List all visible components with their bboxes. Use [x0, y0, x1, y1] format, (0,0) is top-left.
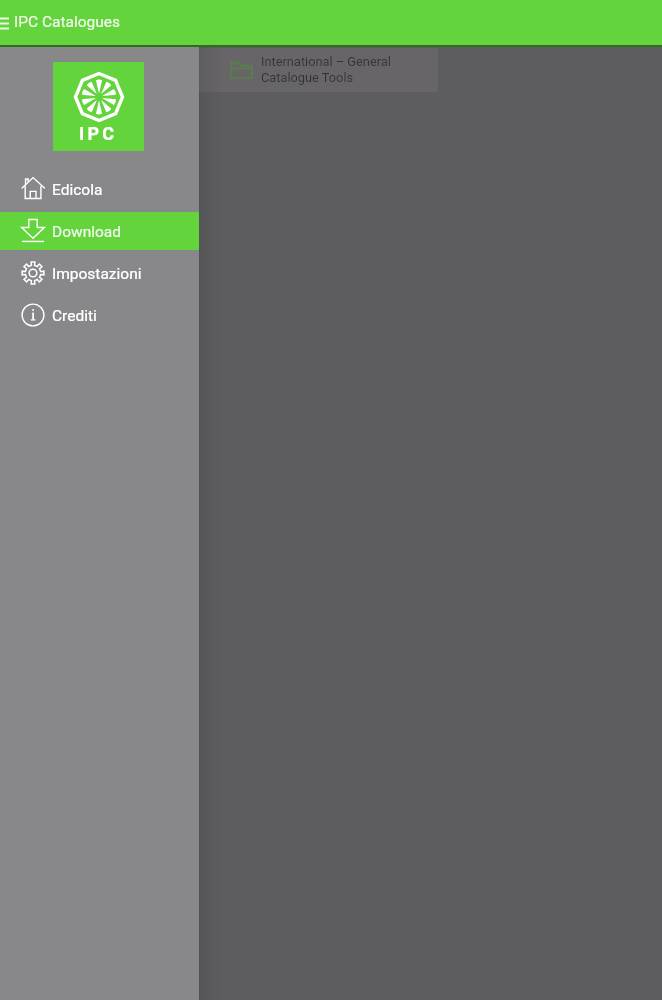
button[interactable]: IPC logo: [53, 62, 144, 151]
staticText: IPC: [79, 123, 118, 144]
button[interactable]: Download: [0, 212, 199, 254]
button[interactable]: International – General: [160, 48, 438, 92]
staticText: Impostazioni: [52, 265, 142, 283]
staticText: International – General: [261, 54, 391, 69]
staticText: IPC Catalogues: [14, 13, 121, 31]
staticText: Crediti: [52, 307, 97, 325]
staticText: Download: [52, 223, 122, 241]
button[interactable]: Edicola: [0, 170, 199, 212]
button[interactable]: Crediti: [0, 296, 199, 338]
staticText: Catalogue Tools: [261, 70, 354, 85]
button[interactable]: Open navigation drawer: [0, 6, 17, 40]
staticText: Edicola: [52, 181, 103, 199]
button[interactable]: Impostazioni: [0, 254, 199, 296]
